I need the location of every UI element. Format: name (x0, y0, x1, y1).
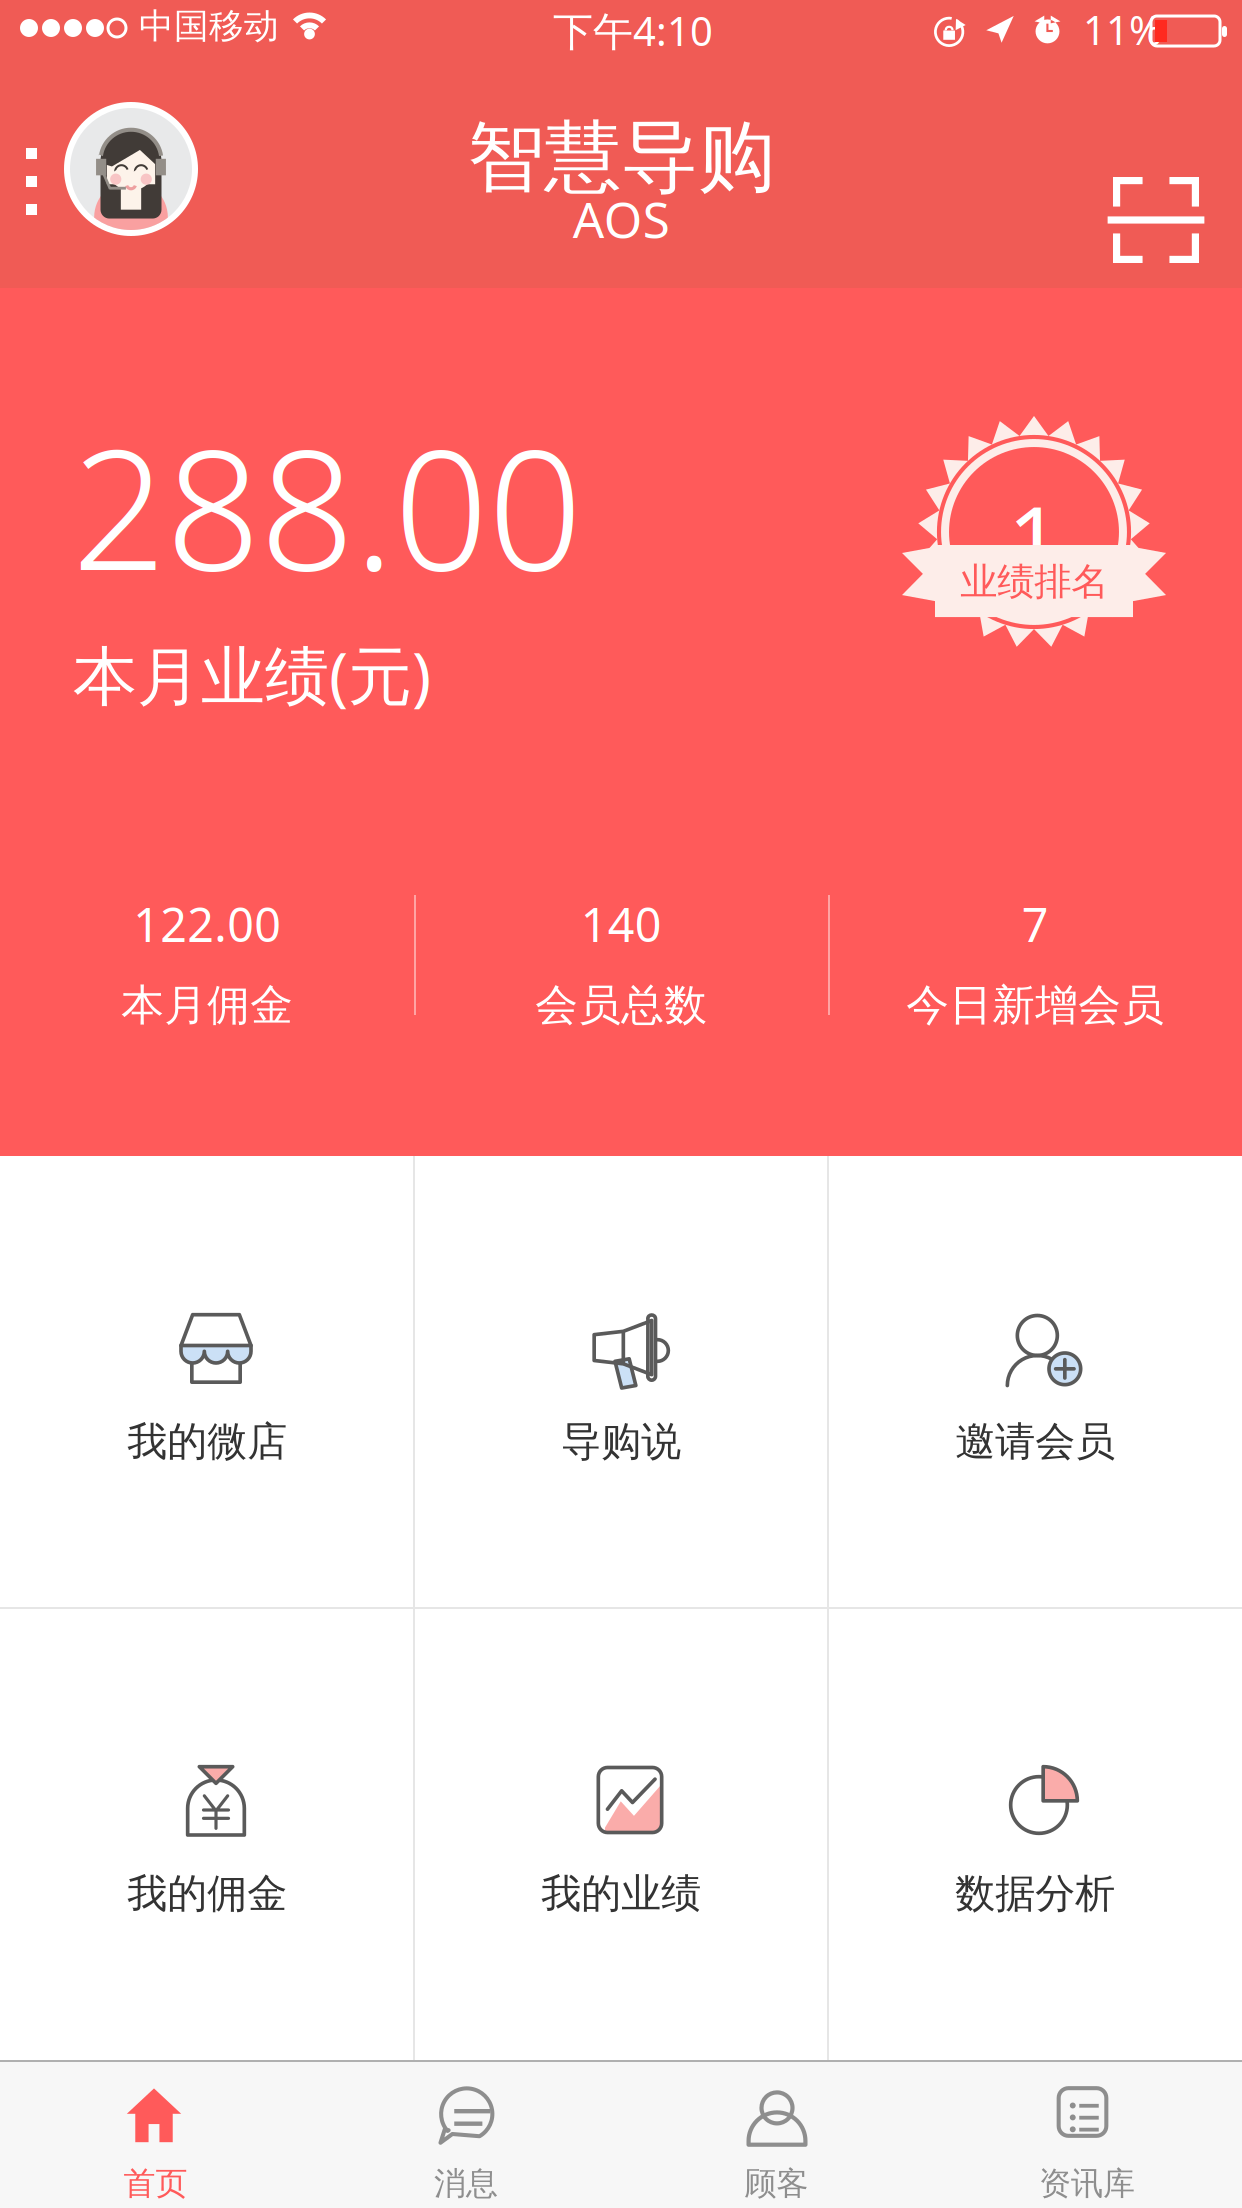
staticText: 我的微店 (127, 1417, 287, 1466)
staticText: 消息 (434, 2164, 498, 2203)
staticText: 资讯库 (1039, 2164, 1135, 2203)
staticText: 本月业绩(元) (73, 632, 431, 717)
staticText: 智慧导购 (467, 110, 775, 205)
staticText: 我的业绩 (541, 1869, 701, 1918)
button[interactable]: 首页 (0, 2062, 310, 2208)
staticText: 中国移动 (139, 5, 279, 48)
button[interactable]: Profile (22, 98, 216, 248)
staticText: 140 (580, 893, 661, 955)
staticText: 我的佣金 (127, 1869, 287, 1918)
staticText: 顾客 (744, 2164, 808, 2203)
button[interactable]: 邀请会员 (828, 1156, 1242, 1608)
staticText: 288.00 (72, 396, 582, 616)
button[interactable]: Scan QR code (1113, 177, 1199, 263)
staticText: 本月佣金 (121, 979, 293, 1031)
staticText: 11% (1083, 3, 1162, 56)
button[interactable]: 导购说 (414, 1156, 828, 1608)
staticText: AOS (572, 186, 669, 251)
staticText: 业绩排名 (960, 559, 1108, 605)
button[interactable]: 资讯库 (931, 2062, 1242, 2208)
staticText: 会员总数 (535, 979, 707, 1031)
button[interactable]: 顾客 (621, 2062, 931, 2208)
staticText: 7 (1021, 893, 1048, 955)
staticText: 今日新增会员 (906, 979, 1164, 1031)
staticText: 首页 (123, 2164, 187, 2203)
staticText: 数据分析 (955, 1869, 1115, 1918)
button[interactable]: 我的佣金 (0, 1608, 414, 2060)
staticText: 导购说 (561, 1417, 681, 1466)
staticText: 122.00 (133, 893, 281, 955)
button[interactable]: 消息 (310, 2062, 621, 2208)
staticText: 1 (1007, 476, 1060, 600)
staticText: 下午4:10 (553, 4, 713, 57)
button[interactable]: 我的微店 (0, 1156, 414, 1608)
button[interactable]: 我的业绩 (414, 1608, 828, 2060)
staticText: 邀请会员 (955, 1417, 1115, 1466)
button[interactable]: 数据分析 (828, 1608, 1242, 2060)
